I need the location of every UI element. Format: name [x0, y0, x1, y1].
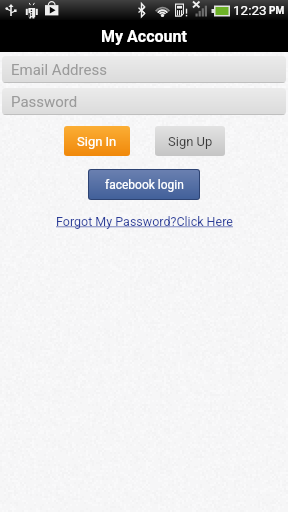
- staticText: My Account: [101, 27, 187, 46]
- staticText: 12:23: [233, 2, 267, 18]
- staticText: Sign In: [77, 134, 117, 149]
- staticText: Password: [11, 93, 78, 111]
- button[interactable]: Password: [2, 88, 286, 115]
- button[interactable]: Forgot My Password?Click Here: [56, 214, 233, 229]
- button[interactable]: Sign Up: [155, 126, 225, 156]
- staticText: Email Address: [11, 61, 107, 79]
- button[interactable]: Sign In: [64, 126, 130, 156]
- staticText: facebook login: [105, 178, 184, 192]
- button[interactable]: facebook login: [89, 170, 199, 199]
- staticText: Sign Up: [168, 134, 213, 149]
- button[interactable]: Email Address: [2, 56, 286, 83]
- staticText: Forgot My Password?Click Here: [56, 214, 233, 229]
- staticText: PM: [269, 5, 285, 17]
